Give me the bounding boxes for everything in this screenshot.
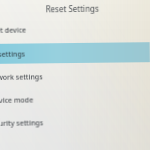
button[interactable]: Network settings	[0, 64, 150, 89]
staticText: Reset Settings	[0, 2, 147, 15]
staticText: Service mode	[0, 94, 138, 106]
staticText: Security settings	[0, 117, 138, 129]
button[interactable]: Reset device	[0, 17, 150, 42]
button[interactable]: Reset Settings	[0, 0, 149, 19]
staticText: Reset device	[0, 24, 135, 36]
staticText: Network settings	[0, 71, 135, 83]
button[interactable]: Security settings	[0, 110, 150, 135]
button[interactable]: Service mode	[0, 87, 150, 112]
button[interactable]: Reset settings	[0, 41, 150, 66]
staticText: Reset settings	[0, 48, 128, 60]
